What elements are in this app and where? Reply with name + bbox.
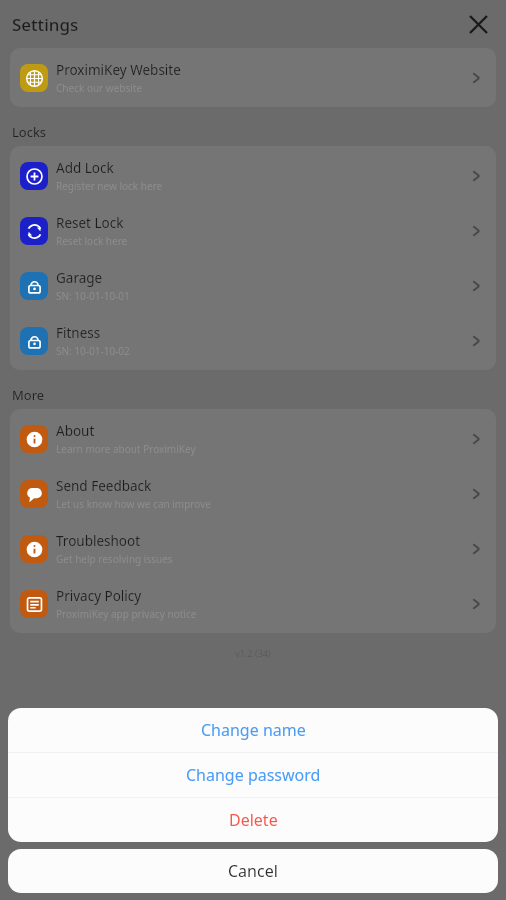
button[interactable]: Reset Lock (10, 203, 496, 258)
staticText: SN: 10-01-10-01 (56, 289, 130, 303)
button[interactable]: Send Feedback (10, 466, 496, 521)
button[interactable]: About (10, 411, 496, 466)
staticText: Get help resolving issues (56, 552, 173, 566)
button[interactable]: Change password (8, 753, 498, 797)
staticText: Check our website (56, 81, 143, 95)
staticText: More (12, 386, 45, 404)
button[interactable]: Troubleshoot (10, 521, 496, 576)
button[interactable]: Delete (8, 798, 498, 842)
button[interactable]: Fitness (10, 313, 496, 368)
staticText: ProximiKey Website (56, 61, 181, 79)
staticText: Locks (12, 123, 47, 141)
staticText: Change name (201, 719, 306, 741)
staticText: Privacy Policy (56, 587, 142, 605)
button[interactable]: Change name (8, 708, 498, 752)
button[interactable]: Add Lock (10, 148, 496, 203)
staticText: About (56, 422, 95, 440)
staticText: Delete (229, 809, 278, 831)
staticText: Learn more about ProximiKey (56, 442, 196, 456)
button[interactable]: Privacy Policy (10, 576, 496, 631)
staticText: ProximiKey app privacy notice (56, 607, 197, 621)
staticText: Change password (186, 764, 321, 786)
staticText: SN: 10-01-10-02 (56, 344, 130, 358)
button[interactable]: Cancel (8, 849, 498, 893)
button[interactable]: Garage (10, 258, 496, 313)
staticText: Reset Lock (56, 214, 124, 232)
button[interactable]: Close settings (461, 7, 495, 41)
staticText: Let us know how we can improve (56, 497, 211, 511)
staticText: Troubleshoot (56, 532, 141, 550)
staticText: Add Lock (56, 159, 114, 177)
staticText: Fitness (56, 324, 101, 342)
staticText: Cancel (228, 860, 278, 882)
staticText: Settings (12, 13, 79, 36)
staticText: Send Feedback (56, 477, 152, 495)
staticText: Register new lock here (56, 179, 163, 193)
button[interactable]: ProximiKey Website (10, 50, 496, 105)
staticText: Reset lock here (56, 234, 128, 248)
staticText: Garage (56, 269, 103, 287)
